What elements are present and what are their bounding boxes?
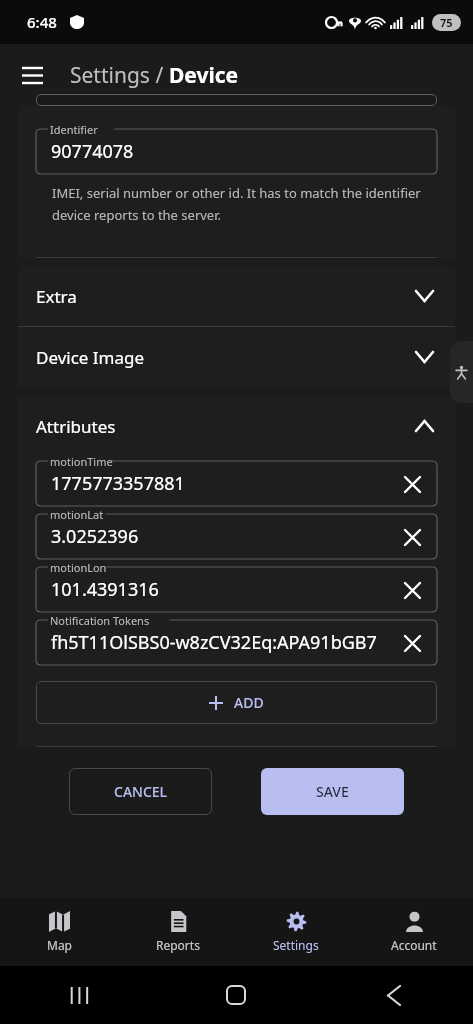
staticText: 6:48 — [27, 12, 57, 32]
staticText: Settings — [70, 61, 150, 90]
staticText: IMEI, serial number or other id. It has … — [52, 184, 421, 224]
staticText: 3.0252396 — [51, 524, 139, 549]
button[interactable]: Clear motionTime — [393, 465, 431, 503]
button[interactable]: Clear Notification Tokens — [393, 624, 431, 662]
staticText: Identifier — [50, 122, 98, 137]
button[interactable]: Menu — [10, 53, 54, 97]
button[interactable]: ADD — [36, 681, 437, 724]
button[interactable]: Clear motionLon — [393, 571, 431, 609]
staticText: 90774078 — [51, 139, 134, 164]
staticText: 75 — [440, 15, 453, 30]
button[interactable]: Back — [315, 966, 473, 1024]
staticText: motionTime — [50, 454, 113, 469]
button[interactable]: Accessibility — [450, 341, 473, 403]
staticText: Attributes — [36, 415, 116, 438]
staticText: motionLat — [50, 507, 104, 522]
button[interactable]: Map — [0, 898, 119, 966]
button[interactable]: Extra — [18, 266, 455, 326]
button[interactable]: Device Image — [18, 327, 455, 387]
staticText: Extra — [36, 285, 77, 308]
staticText: Reports — [156, 937, 200, 953]
staticText: Notification Tokens — [50, 613, 150, 628]
button[interactable]: CANCEL — [69, 768, 212, 815]
staticText: CANCEL — [114, 782, 168, 801]
staticText: fh5T11OlSBS0-w8zCV32Eq:APA91bGB7 — [51, 630, 377, 655]
staticText: Map — [47, 937, 72, 953]
button[interactable]: Recents — [0, 966, 157, 1024]
staticText: Device — [169, 61, 239, 90]
staticText: Settings — [273, 937, 319, 953]
staticText: 101.4391316 — [51, 577, 159, 602]
button[interactable]: Settings — [237, 898, 355, 966]
staticText: motionLon — [50, 560, 107, 575]
staticText: 1775773357881 — [51, 471, 185, 496]
staticText: / — [150, 61, 169, 90]
staticText: Account — [391, 937, 437, 953]
staticText: Device Image — [36, 346, 145, 369]
button[interactable]: Clear motionLat — [393, 518, 431, 556]
button[interactable]: Attributes — [18, 395, 455, 457]
staticText: SAVE — [316, 782, 349, 801]
staticText: ADD — [234, 693, 264, 712]
button[interactable]: Reports — [119, 898, 237, 966]
button[interactable]: Account — [355, 898, 473, 966]
button[interactable]: SAVE — [261, 768, 404, 815]
button[interactable]: Home — [157, 966, 315, 1024]
